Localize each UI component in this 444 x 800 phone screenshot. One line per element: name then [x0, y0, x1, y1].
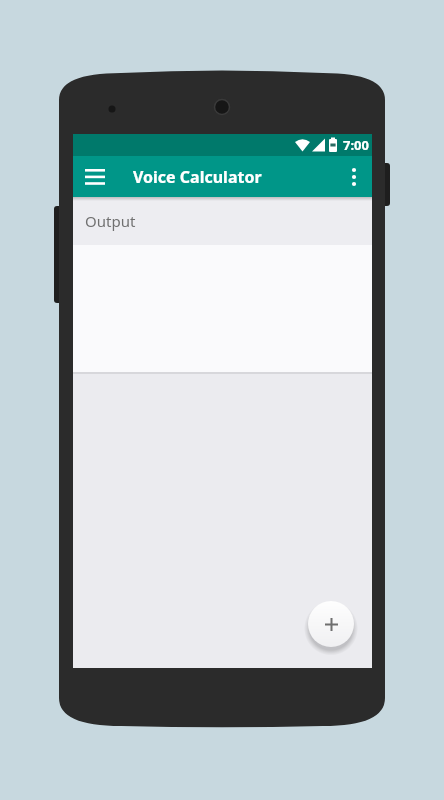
button[interactable]	[308, 601, 354, 647]
staticText: Voice Calculator	[133, 166, 262, 188]
staticText: Output	[85, 211, 136, 231]
staticText: 7:00	[343, 136, 369, 154]
button[interactable]	[336, 156, 372, 197]
button[interactable]	[73, 156, 117, 197]
